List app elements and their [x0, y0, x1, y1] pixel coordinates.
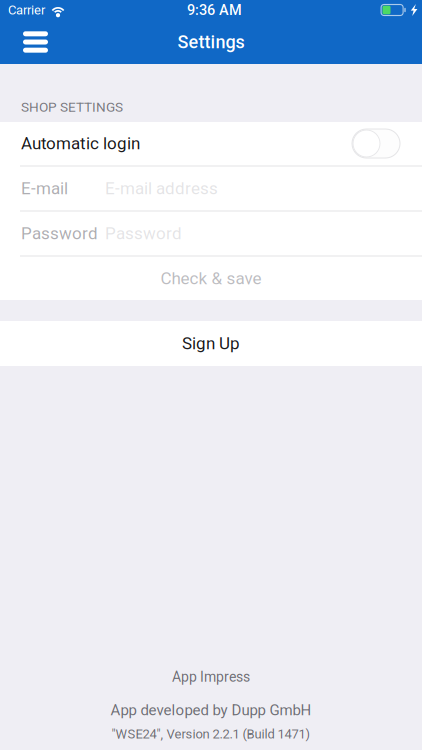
staticText: Carrier: [8, 2, 45, 18]
staticText: E-mail address: [105, 178, 218, 198]
button[interactable]: App Impress: [0, 668, 422, 686]
staticText: Automatic login: [21, 133, 140, 153]
button[interactable]: Check & save: [0, 256, 422, 300]
staticText: Check & save: [160, 268, 261, 288]
staticText: Password: [21, 223, 98, 243]
button[interactable]: Menu: [0, 20, 58, 64]
staticText: SHOP SETTINGS: [21, 99, 123, 115]
button[interactable]: Sign Up: [0, 321, 422, 366]
staticText: E-mail: [21, 178, 68, 198]
staticText: Settings: [177, 31, 244, 53]
staticText: "WSE24", Version 2.2.1 (Build 1471): [111, 726, 310, 742]
staticText: Sign Up: [182, 333, 240, 353]
staticText: Password: [105, 223, 182, 243]
staticText: 9:36 AM: [187, 1, 242, 18]
staticText: App developed by Dupp GmbH: [110, 701, 311, 719]
staticText: App Impress: [172, 669, 250, 685]
